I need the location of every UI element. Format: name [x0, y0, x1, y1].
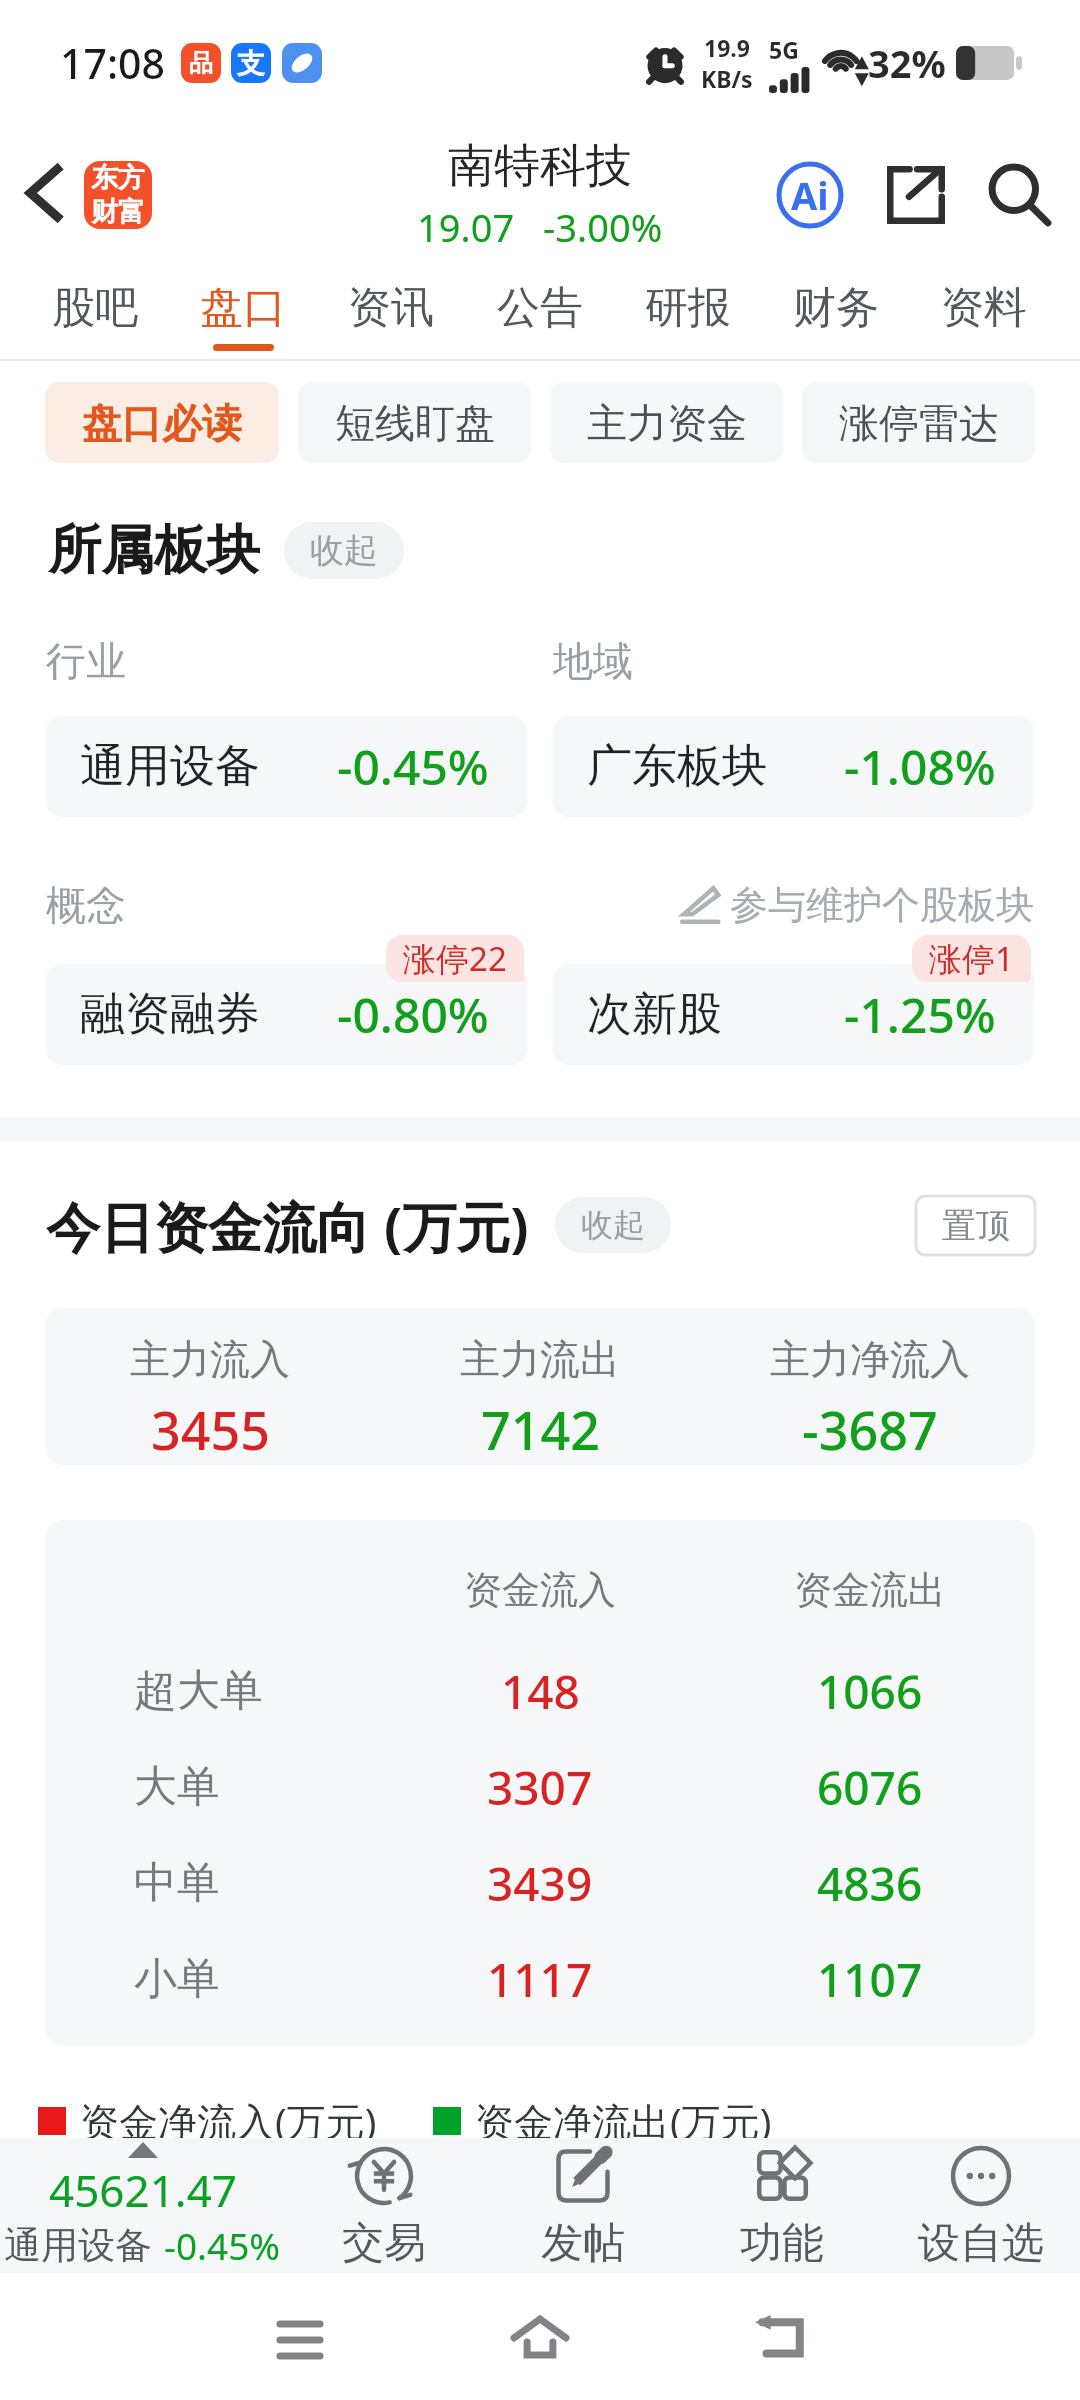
- staticText: 收起: [581, 1205, 645, 1245]
- staticText: 涨停雷达: [839, 398, 999, 448]
- button[interactable]: 参与维护个股板块: [678, 881, 1034, 929]
- staticText: 研报: [645, 281, 731, 335]
- staticText: 19.9: [704, 32, 750, 63]
- staticText: 17:08: [60, 35, 165, 91]
- staticText: 资金净流入(万元): [80, 2094, 377, 2147]
- button[interactable]: 融资融券: [46, 964, 527, 1065]
- staticText: 资金流入: [464, 1566, 616, 1614]
- button[interactable]: 资讯: [348, 258, 434, 358]
- staticText: 概念: [46, 880, 126, 930]
- button[interactable]: 通用设备: [46, 716, 527, 817]
- button[interactable]: 研报: [645, 258, 731, 358]
- button[interactable]: 45621.47: [0, 2138, 284, 2273]
- button[interactable]: 设自选: [881, 2138, 1080, 2273]
- button[interactable]: 交易: [284, 2138, 483, 2273]
- button[interactable]: Recents: [245, 2282, 355, 2392]
- staticText: -0.45%: [164, 2220, 281, 2270]
- staticText: -0.45%: [337, 734, 489, 799]
- button[interactable]: 主力资金: [550, 382, 783, 463]
- staticText: 资金净流出(万元): [475, 2094, 772, 2147]
- button[interactable]: 小单: [45, 1931, 1035, 2027]
- staticText: -3687: [802, 1394, 938, 1465]
- staticText: 品: [189, 48, 213, 78]
- button[interactable]: 股吧: [52, 258, 138, 358]
- button[interactable]: 发帖: [483, 2138, 682, 2273]
- button[interactable]: 财务: [793, 258, 879, 358]
- staticText: 发帖: [541, 2217, 625, 2270]
- button[interactable]: AI assistant: [768, 153, 852, 237]
- button[interactable]: 涨停雷达: [802, 382, 1035, 463]
- staticText: 主力净流入: [770, 1334, 970, 1384]
- staticText: 1107: [817, 1948, 923, 2011]
- staticText: 4836: [817, 1852, 923, 1915]
- staticText: 小单: [134, 1952, 220, 2006]
- button[interactable]: 置顶: [916, 1196, 1035, 1255]
- staticText: 融资融券: [80, 986, 260, 1043]
- button[interactable]: 短线盯盘: [298, 382, 531, 463]
- staticText: 通用设备: [80, 738, 260, 795]
- button[interactable]: 功能: [682, 2138, 881, 2273]
- staticText: Ai: [791, 169, 829, 221]
- staticText: 资讯: [348, 281, 434, 335]
- staticText: 主力资金: [587, 398, 747, 448]
- button[interactable]: Share: [878, 157, 954, 233]
- staticText: 行业: [46, 636, 126, 686]
- staticText: -1.25%: [844, 982, 996, 1047]
- staticText: -0.80%: [337, 982, 489, 1047]
- staticText: 次新股: [587, 986, 722, 1043]
- staticText: 超大单: [134, 1664, 263, 1718]
- staticText: 今日资金流向 (万元): [46, 1189, 529, 1261]
- staticText: 置顶: [942, 1204, 1010, 1247]
- button[interactable]: 广东板块: [553, 716, 1034, 817]
- staticText: 32%: [868, 37, 946, 89]
- staticText: 主力流入: [130, 1334, 290, 1384]
- button[interactable]: Back: [0, 130, 86, 255]
- button[interactable]: 主力流入: [45, 1308, 1035, 1465]
- button[interactable]: East Money: [84, 161, 152, 229]
- staticText: 收起: [310, 529, 378, 572]
- staticText: 通用设备: [4, 2222, 152, 2269]
- button[interactable]: 中单: [45, 1835, 1035, 1931]
- staticText: 涨停1: [929, 936, 1014, 981]
- staticText: 短线盯盘: [335, 398, 495, 448]
- staticText: 5G: [769, 34, 799, 65]
- staticText: 3455: [151, 1394, 270, 1465]
- staticText: 参与维护个股板块: [730, 881, 1034, 929]
- staticText: 7142: [481, 1394, 600, 1465]
- button[interactable]: 收起: [284, 522, 404, 579]
- staticText: KB/s: [701, 63, 753, 94]
- button[interactable]: 大单: [45, 1739, 1035, 1835]
- staticText: -3.00%: [543, 201, 663, 253]
- staticText: 交易: [342, 2217, 426, 2270]
- staticText: 45621.47: [49, 2160, 237, 2220]
- button[interactable]: 次新股: [553, 964, 1034, 1065]
- button[interactable]: 收起: [555, 1197, 671, 1253]
- button[interactable]: 盘口: [200, 258, 286, 358]
- staticText: 涨停22: [403, 936, 507, 981]
- button[interactable]: Search: [982, 157, 1058, 233]
- button[interactable]: Back: [725, 2282, 835, 2392]
- staticText: 功能: [740, 2217, 824, 2270]
- staticText: 股吧: [52, 281, 138, 335]
- button[interactable]: 超大单: [45, 1643, 1035, 1739]
- staticText: 大单: [134, 1760, 220, 1814]
- staticText: 资金流出: [794, 1566, 946, 1614]
- staticText: 盘口: [200, 281, 286, 335]
- staticText: 19.07: [417, 201, 515, 253]
- staticText: 盘口必读: [82, 398, 242, 448]
- staticText: 1117: [487, 1948, 593, 2011]
- staticText: 3307: [487, 1756, 593, 1819]
- button[interactable]: 盘口必读: [45, 382, 279, 463]
- staticText: 资料: [941, 281, 1027, 335]
- staticText: 1066: [817, 1660, 923, 1723]
- staticText: 设自选: [918, 2217, 1044, 2270]
- button[interactable]: Home: [485, 2282, 595, 2392]
- staticText: 东方: [91, 161, 145, 195]
- staticText: 财富: [91, 195, 145, 229]
- button[interactable]: 公告: [497, 258, 583, 358]
- button[interactable]: 资料: [941, 258, 1027, 358]
- staticText: 6076: [817, 1756, 923, 1819]
- staticText: -1.08%: [844, 734, 996, 799]
- staticText: 支: [237, 46, 265, 81]
- staticText: 所属板块: [48, 517, 260, 584]
